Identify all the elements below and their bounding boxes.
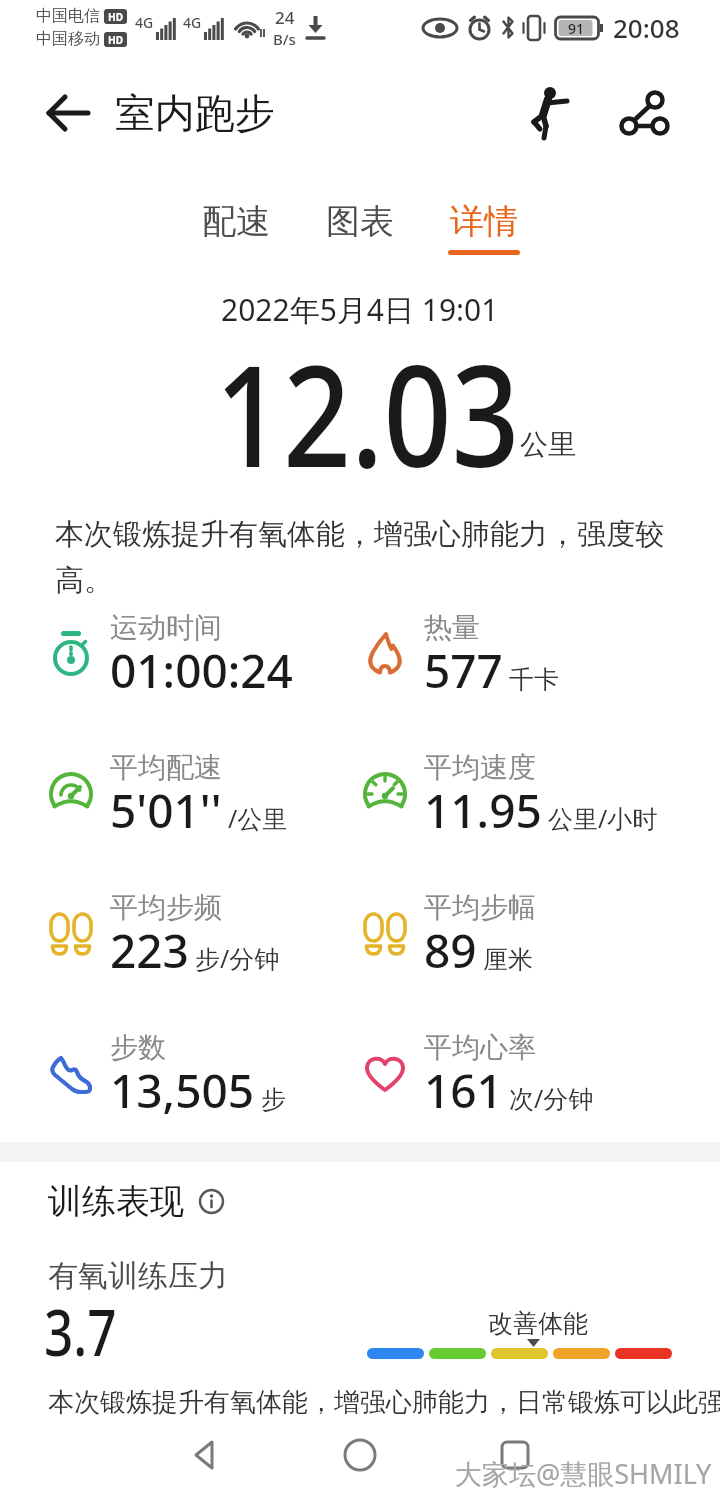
staticText: HD <box>108 33 123 47</box>
staticText: 11.95 <box>424 779 542 842</box>
staticText: 91 <box>568 19 585 38</box>
staticText: 有氧训练压力 <box>48 1257 228 1295</box>
staticText: /公里 <box>228 801 288 835</box>
button[interactable] <box>45 94 91 132</box>
staticText: 千卡 <box>509 664 559 695</box>
staticText: 步数 <box>110 1030 166 1065</box>
staticText: 图表 <box>326 200 394 243</box>
staticText: 训练表现 <box>48 1180 184 1223</box>
button[interactable]: 图表 <box>326 200 394 243</box>
staticText: 本次锻炼提升有氧体能，增强心肺能力，日常锻炼可以此强 <box>48 1386 720 1419</box>
button[interactable] <box>618 90 668 136</box>
staticText: 本次锻炼提升有氧体能，增强心肺能力，强度较 高。 <box>55 516 664 599</box>
staticText: 平均步幅 <box>424 890 536 925</box>
staticText: 厘米 <box>483 944 533 975</box>
staticText: 步 <box>261 1084 286 1115</box>
staticText: 3.7 <box>44 1288 117 1375</box>
staticText: 161 <box>424 1059 503 1122</box>
button[interactable] <box>198 1188 225 1215</box>
staticText: 4G <box>183 13 202 32</box>
staticText: 次/分钟 <box>509 1081 594 1115</box>
staticText: 01:00:24 <box>110 639 293 702</box>
staticText: 平均速度 <box>424 750 536 785</box>
staticText: 13,505 <box>110 1059 255 1122</box>
staticText: 223 <box>110 919 189 982</box>
staticText: 12.03 <box>215 317 520 508</box>
staticText: 4G <box>135 13 154 32</box>
staticText: 89 <box>424 919 477 982</box>
staticText: 公里 <box>520 427 576 462</box>
staticText: 中国电信 <box>36 6 100 26</box>
staticText: 详情 <box>450 200 518 243</box>
staticText: 平均配速 <box>110 750 222 785</box>
staticText: 配速 <box>202 200 270 243</box>
button[interactable]: 详情 <box>450 200 518 243</box>
staticText: 20:08 <box>613 10 680 45</box>
staticText: 大家坛@慧眼SHMILY <box>455 1455 712 1492</box>
button[interactable] <box>189 1439 221 1471</box>
staticText: 平均心率 <box>424 1030 536 1065</box>
staticText: 步/分钟 <box>195 941 280 975</box>
staticText: 2022年5月4日 19:01 <box>221 289 499 330</box>
staticText: 24 <box>275 6 295 29</box>
staticText: 室内跑步 <box>115 88 275 138</box>
staticText: HD <box>108 10 123 24</box>
staticText: 中国移动 <box>36 29 100 49</box>
staticText: 5'01'' <box>110 779 222 842</box>
staticText: 改善体能 <box>488 1308 588 1339</box>
staticText: B/s <box>273 29 296 49</box>
button[interactable] <box>499 1439 531 1471</box>
staticText: 运动时间 <box>110 610 222 645</box>
staticText: 577 <box>424 639 503 702</box>
button[interactable] <box>522 85 574 141</box>
staticText: 平均步频 <box>110 890 222 925</box>
button[interactable]: 配速 <box>202 200 270 243</box>
staticText: 热量 <box>424 610 480 645</box>
staticText: 公里/小时 <box>548 801 658 835</box>
button[interactable] <box>344 1439 376 1471</box>
